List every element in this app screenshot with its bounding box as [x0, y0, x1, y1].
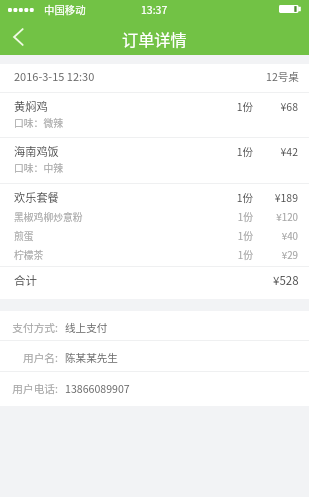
staticText: 口味：微辣 — [14, 116, 63, 130]
staticText: 线上支付 — [65, 320, 108, 335]
staticText: 用户名: — [10, 350, 58, 365]
staticText: ¥189 — [258, 190, 298, 205]
staticText: ¥29 — [258, 248, 298, 262]
staticText: 黑椒鸡柳炒意粉 — [14, 210, 83, 224]
staticText: 陈某某先生 — [65, 350, 118, 365]
staticText: 13:37 — [141, 2, 168, 17]
staticText: 柠檬茶 — [14, 248, 44, 262]
staticText: 海南鸡饭 — [14, 143, 59, 159]
button[interactable]: 用户电话: — [10, 372, 295, 406]
button[interactable]: 用户名: — [10, 341, 295, 371]
staticText: 1份 — [213, 229, 253, 243]
staticText: 口味：中辣 — [14, 161, 63, 175]
staticText: 黄焖鸡 — [14, 98, 48, 114]
staticText: 2016-3-15 12:30 — [14, 68, 95, 84]
button[interactable]: 欢乐套餐 — [14, 184, 298, 266]
staticText: 订单详情 — [122, 27, 187, 50]
button[interactable]: 支付方式: — [10, 311, 295, 340]
staticText: 欢乐套餐 — [14, 189, 59, 205]
staticText: 13866089907 — [65, 381, 130, 396]
staticText: ¥68 — [258, 99, 298, 114]
staticText: 1份 — [213, 144, 253, 159]
staticText: ¥120 — [258, 210, 298, 224]
staticText: 用户电话: — [10, 381, 58, 396]
staticText: ¥528 — [273, 272, 299, 289]
button[interactable]: 海南鸡饭 — [14, 138, 298, 183]
staticText: 中国移动 — [44, 2, 86, 17]
staticText: 1份 — [213, 248, 253, 262]
staticText: 1份 — [213, 210, 253, 224]
button[interactable]: Back — [0, 21, 34, 55]
staticText: ¥40 — [258, 229, 298, 243]
staticText: 12号桌 — [266, 69, 299, 84]
staticText: 煎蛋 — [14, 229, 34, 243]
staticText: 合计 — [14, 272, 37, 289]
staticText: ¥42 — [258, 144, 298, 159]
staticText: 1份 — [213, 190, 253, 205]
button[interactable]: 黄焖鸡 — [14, 93, 298, 137]
staticText: 1份 — [213, 99, 253, 114]
staticText: 支付方式: — [10, 320, 58, 335]
